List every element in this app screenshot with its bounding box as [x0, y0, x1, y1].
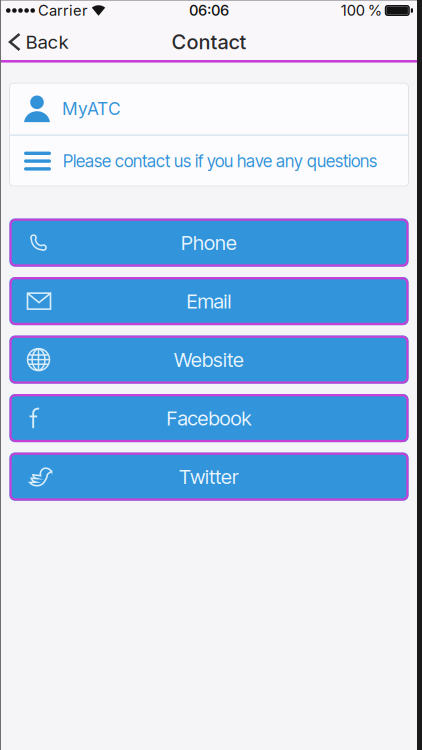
button[interactable]: Phone — [9, 219, 408, 267]
staticText: Twitter — [179, 464, 239, 489]
staticText: 100 % — [341, 2, 382, 19]
staticText: MyATC — [62, 98, 121, 119]
staticText: Facebook — [166, 406, 251, 430]
button[interactable]: Facebook — [9, 394, 408, 442]
button[interactable]: Email — [9, 277, 408, 325]
staticText: Back — [25, 31, 68, 53]
button[interactable]: Website — [9, 336, 408, 384]
button[interactable]: Twitter — [9, 453, 408, 501]
button[interactable]: Back — [1, 29, 68, 51]
staticText: Contact — [171, 30, 246, 54]
staticText: Email — [186, 289, 231, 313]
staticText: Please contact us if you have any questi… — [63, 151, 377, 171]
staticText: Website — [174, 347, 244, 372]
staticText: 06:06 — [189, 2, 229, 19]
staticText: Phone — [181, 230, 237, 255]
staticText: Carrier — [38, 2, 88, 19]
